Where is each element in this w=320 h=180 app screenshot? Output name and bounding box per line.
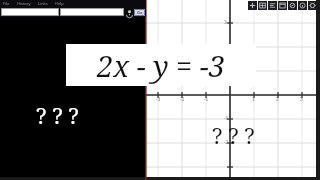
- button[interactable]: [1, 8, 59, 16]
- button[interactable]: 2x − y = −3: [66, 44, 256, 86]
- staticText: File: [3, 1, 10, 6]
- button[interactable]: Info: [298, 1, 307, 10]
- staticText: Go: [137, 10, 143, 15]
- button[interactable]: Links: [38, 1, 48, 6]
- button[interactable]: Help: [55, 1, 64, 6]
- staticText: ? ? ?: [212, 120, 255, 150]
- button[interactable]: Voice input: [126, 9, 133, 16]
- staticText: 3: [224, 19, 227, 26]
- button[interactable]: Align: [268, 1, 277, 10]
- staticText: Help: [55, 1, 64, 6]
- button[interactable]: Settings: [308, 1, 317, 10]
- staticText: -1: [224, 115, 229, 122]
- staticText: 1: [252, 96, 255, 103]
- button[interactable]: Add: [248, 1, 257, 10]
- button[interactable]: Window: [278, 1, 287, 10]
- staticText: 2: [276, 96, 279, 103]
- staticText: -3: [156, 96, 161, 103]
- staticText: Links: [38, 1, 48, 6]
- button[interactable]: [60, 8, 124, 16]
- button[interactable]: Table: [258, 1, 267, 10]
- staticText: -1: [204, 96, 209, 103]
- button[interactable]: Image: [288, 1, 297, 10]
- staticText: -2: [180, 96, 185, 103]
- button[interactable]: History: [17, 1, 31, 6]
- button[interactable]: File: [3, 1, 10, 6]
- button[interactable]: Go: [134, 9, 145, 16]
- staticText: ? ? ?: [36, 100, 79, 130]
- staticText: History: [17, 1, 31, 6]
- staticText: 3: [300, 96, 303, 103]
- staticText: 2x − y = −3: [97, 46, 225, 85]
- staticText: -2: [224, 139, 229, 146]
